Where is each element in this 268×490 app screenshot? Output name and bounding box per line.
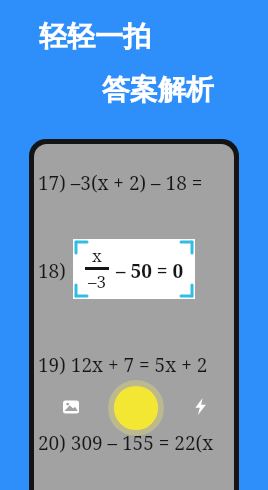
staticText: 17) –3(x + 2) – 18 = bbox=[38, 170, 203, 196]
staticText: 轻轻一拍 bbox=[39, 19, 151, 54]
button[interactable] bbox=[73, 239, 195, 299]
staticText: 18) bbox=[38, 258, 66, 284]
staticText: – 50 = 0 bbox=[116, 258, 184, 284]
staticText: 答案解析 bbox=[102, 72, 214, 107]
staticText: 20) 309 – 155 = 22(x bbox=[38, 430, 214, 456]
staticText: –3 bbox=[88, 270, 107, 293]
button[interactable]: Flash bbox=[189, 395, 211, 417]
staticText: 19) 12x + 7 = 5x + 2 bbox=[38, 352, 208, 378]
button[interactable]: Gallery bbox=[60, 396, 82, 418]
button[interactable]: Shutter bbox=[108, 380, 164, 436]
staticText: x bbox=[92, 244, 102, 267]
